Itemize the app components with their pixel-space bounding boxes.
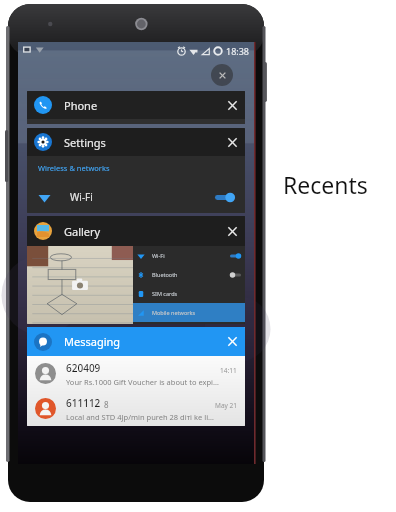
staticText: Bluetooth — [152, 271, 178, 278]
staticText: 611112 — [66, 396, 101, 410]
staticText: Your Rs.1000 Gift Voucher is about to ex… — [66, 377, 219, 387]
staticText: Settings — [64, 135, 106, 150]
button[interactable]: Close Messaging — [226, 335, 239, 348]
button[interactable]: Wi-Fi — [27, 185, 245, 209]
staticText: Gallery — [64, 224, 101, 239]
staticText: Mobile networks — [152, 309, 196, 316]
staticText: Wi-Fi — [70, 190, 93, 204]
button[interactable]: Bluetooth — [133, 265, 245, 284]
button[interactable]: Mobile networks — [133, 303, 245, 322]
button[interactable]: 620409 — [27, 356, 245, 391]
button[interactable]: Gallery — [27, 216, 245, 246]
button[interactable]: Close all recent apps — [211, 64, 233, 86]
button[interactable]: Close Phone — [226, 99, 239, 112]
button[interactable]: Close Settings — [226, 136, 239, 149]
staticText: Wireless & networks — [38, 163, 110, 173]
staticText: SIM cards — [152, 290, 178, 297]
button[interactable]: Messaging — [27, 327, 245, 356]
staticText: Messaging — [64, 334, 121, 349]
button[interactable]: SIM cards — [133, 284, 245, 303]
button[interactable]: Phone — [27, 91, 245, 124]
staticText: May 21 — [215, 401, 237, 410]
staticText: Recents — [283, 169, 368, 200]
button[interactable]: Settings — [27, 128, 245, 156]
button[interactable]: Phone — [27, 91, 245, 119]
button[interactable]: Messaging — [27, 327, 245, 426]
button[interactable]: 611112 — [27, 391, 245, 426]
staticText: 620409 — [66, 361, 101, 375]
staticText: 14:11 — [220, 366, 237, 375]
button[interactable]: Settings — [27, 128, 245, 213]
button[interactable]: Wi-Fi — [133, 246, 245, 265]
staticText: 8 — [104, 399, 109, 410]
staticText: Local and STD 4Јp/min pureh 28 diтi ke l… — [66, 412, 214, 422]
staticText: Wi-Fi — [152, 252, 165, 259]
button[interactable]: Gallery — [27, 216, 245, 324]
staticText: 18:38 — [226, 45, 250, 57]
button[interactable]: Close Gallery — [226, 225, 239, 238]
staticText: Phone — [64, 98, 98, 113]
